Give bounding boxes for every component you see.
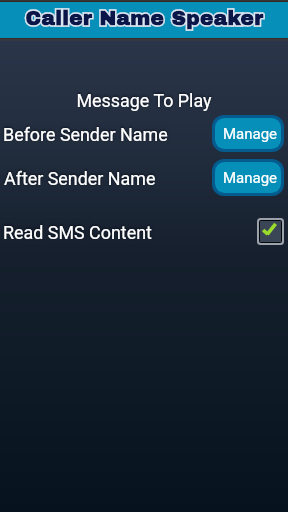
staticText: Message To Play <box>0 90 288 111</box>
button[interactable]: Manage <box>212 159 284 196</box>
staticText: Manage <box>223 169 278 187</box>
staticText: Caller Name Speaker <box>25 7 264 29</box>
button[interactable]: Read SMS Content, checked <box>257 218 284 245</box>
staticText: Before Sender Name <box>3 124 168 145</box>
staticText: After Sender Name <box>4 168 156 189</box>
staticText: Manage <box>223 125 278 143</box>
staticText: Read SMS Content <box>3 222 152 243</box>
staticText: Caller Name Speaker <box>25 7 264 29</box>
button[interactable]: Manage <box>212 115 284 152</box>
